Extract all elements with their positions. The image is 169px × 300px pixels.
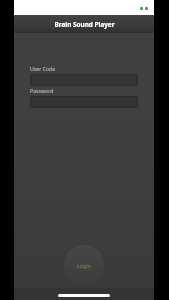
button[interactable]: Login [64,245,104,285]
other: Battery [145,7,148,10]
other: Signal [140,7,143,10]
staticText: Password [30,87,54,94]
staticText: User Code [30,65,56,72]
staticText: Login [77,262,91,269]
staticText: Brain Sound Player [54,20,115,29]
